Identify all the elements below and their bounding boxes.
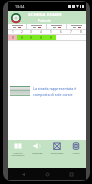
staticText: 5 [50,30,52,34]
staticText: 4 [40,30,42,34]
staticText: V [50,36,52,40]
button[interactable]: Home [44,171,50,177]
staticText: V [40,36,42,40]
staticText: Prova in Movimento [9,151,27,157]
button[interactable]: Manuale [9,142,27,157]
button[interactable]: Avanti [67,142,85,154]
button[interactable]: Scheda [48,142,66,154]
button[interactable]: 8 [76,30,86,34]
button[interactable]: Audio [28,142,46,154]
button[interactable]: V [46,35,56,40]
staticText: 7 [70,30,72,34]
staticText: V [12,36,14,40]
button[interactable]: 5 [46,30,56,34]
other: Scheda [53,142,61,150]
other: Avanti [72,142,80,150]
other: Audio [33,142,41,150]
staticText: 2 [21,30,23,34]
button[interactable]: 3 [26,30,36,34]
staticText: V [21,36,23,40]
other: Manuale [14,142,22,150]
staticText: 8 [80,30,82,34]
button[interactable]: 7 [66,30,76,34]
button[interactable]: V [26,35,36,40]
button[interactable]: SCHEDA ESAME [8,11,86,24]
button[interactable]: 2 [17,30,26,34]
button[interactable]: 1 [8,30,17,34]
staticText: Salvataggio [50,151,64,154]
staticText: Patente [38,18,52,23]
button[interactable]: 4 [36,30,46,34]
staticText: La strada rappresentata è [33,86,77,91]
staticText: composta di sole corsie [33,92,73,97]
button[interactable]: 6 [56,30,66,34]
staticText: SCHEDA ESAME [28,12,62,18]
staticText: Avanti [72,151,80,154]
button[interactable]: Back [20,171,26,177]
button[interactable]: V [17,35,26,40]
button[interactable]: Recents [68,171,74,177]
staticText: 1 [12,30,14,34]
staticText: V [30,36,32,40]
button[interactable]: V [36,35,46,40]
staticText: Riepilogo [32,151,43,154]
button[interactable]: V [8,35,17,40]
staticText: 6 [60,30,62,34]
staticText: 3 [30,30,32,34]
staticText: 13:34 [15,4,25,9]
